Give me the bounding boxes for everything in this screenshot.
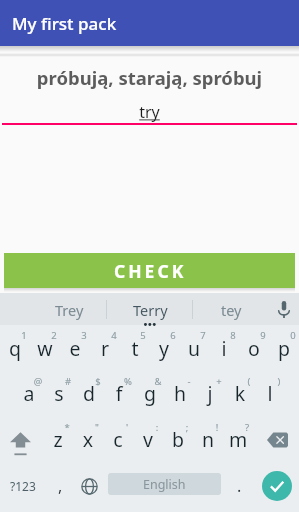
staticText: ) (259, 375, 299, 388)
staticText: 1 (4, 329, 44, 342)
staticText: 6 (153, 329, 193, 342)
staticText: próbują, starają, spróbuj (0, 65, 299, 90)
button[interactable]: English (108, 473, 221, 495)
staticText: 5 (123, 329, 163, 342)
staticText: c (98, 426, 138, 453)
staticText: ; (167, 421, 207, 434)
staticText: i (204, 335, 244, 362)
staticText: u (174, 335, 214, 362)
button[interactable] (269, 321, 299, 367)
staticText: CHECK (114, 259, 187, 283)
button[interactable] (120, 321, 150, 367)
staticText: : (137, 421, 177, 434)
staticText: l (250, 380, 290, 407)
staticText: k (220, 380, 260, 407)
button[interactable] (103, 413, 133, 459)
staticText: Trey (55, 300, 84, 320)
button[interactable]: Shift (0, 424, 42, 470)
staticText: y (144, 335, 184, 362)
button[interactable]: Change language (73, 464, 105, 508)
button[interactable]: tey (191, 293, 271, 325)
staticText: 4 (94, 329, 134, 342)
staticText: w (25, 335, 65, 362)
staticText: 3 (64, 329, 104, 342)
button[interactable] (133, 413, 163, 459)
staticText: t (115, 335, 155, 362)
button[interactable]: Backspace (257, 424, 299, 470)
staticText: English (143, 476, 186, 493)
button[interactable]: ?123 (0, 464, 45, 508)
button[interactable]: Terry (110, 293, 190, 325)
button[interactable] (209, 321, 239, 367)
staticText: ( (229, 375, 269, 388)
staticText: h (160, 380, 200, 407)
staticText: + (199, 375, 239, 388)
button[interactable]: Voice input (268, 293, 299, 325)
button[interactable] (163, 413, 193, 459)
staticText: 0 (273, 329, 299, 342)
staticText: 9 (243, 329, 283, 342)
button[interactable] (179, 321, 209, 367)
button[interactable] (165, 367, 195, 413)
button[interactable]: , (45, 464, 76, 508)
staticText: z (38, 426, 78, 453)
staticText: try (0, 101, 299, 123)
button[interactable] (44, 367, 74, 413)
button[interactable] (60, 321, 90, 367)
staticText: 7 (183, 329, 223, 342)
button[interactable]: My first pack (0, 0, 299, 46)
button[interactable] (43, 413, 73, 459)
button[interactable] (0, 321, 30, 367)
staticText: m (218, 426, 258, 453)
staticText: ! (197, 421, 237, 434)
button[interactable] (225, 367, 255, 413)
staticText: e (55, 335, 95, 362)
staticText: # (48, 375, 88, 388)
staticText: j (190, 380, 230, 407)
staticText: - (169, 375, 209, 388)
button[interactable] (193, 413, 223, 459)
staticText: $ (78, 375, 118, 388)
staticText: g (130, 380, 170, 407)
button[interactable] (255, 367, 285, 413)
button[interactable] (239, 321, 269, 367)
staticText: tey (221, 300, 242, 320)
staticText: . (237, 475, 242, 497)
button[interactable] (14, 367, 44, 413)
button[interactable] (73, 413, 103, 459)
staticText: v (128, 426, 168, 453)
staticText: ?123 (10, 478, 36, 494)
button[interactable]: Enter (262, 471, 292, 501)
staticText: & (138, 375, 178, 388)
button[interactable] (74, 367, 104, 413)
staticText: " (77, 421, 117, 434)
button[interactable] (90, 321, 120, 367)
staticText: ' (107, 421, 147, 434)
staticText: q (0, 335, 35, 362)
staticText: My first pack (12, 12, 117, 35)
staticText: 8 (213, 329, 253, 342)
button[interactable]: . (223, 464, 255, 508)
button[interactable] (150, 321, 180, 367)
staticText: Terry (133, 300, 168, 320)
staticText: * (47, 421, 87, 434)
button[interactable]: CHECK (4, 253, 295, 288)
staticText: b (158, 426, 198, 453)
staticText: 2 (34, 329, 74, 342)
staticText: r (85, 335, 125, 362)
staticText: @ (18, 375, 58, 388)
button[interactable] (104, 367, 134, 413)
staticText: a (9, 380, 49, 407)
button[interactable] (30, 321, 60, 367)
button[interactable] (195, 367, 225, 413)
staticText: f (99, 380, 139, 407)
staticText: x (68, 426, 108, 453)
button[interactable] (223, 413, 253, 459)
staticText: s (39, 380, 79, 407)
staticText: p (264, 335, 299, 362)
staticText: d (69, 380, 109, 407)
button[interactable] (134, 367, 164, 413)
button[interactable]: Trey (29, 293, 109, 325)
staticText: , (58, 475, 63, 497)
staticText: ? (227, 421, 267, 434)
